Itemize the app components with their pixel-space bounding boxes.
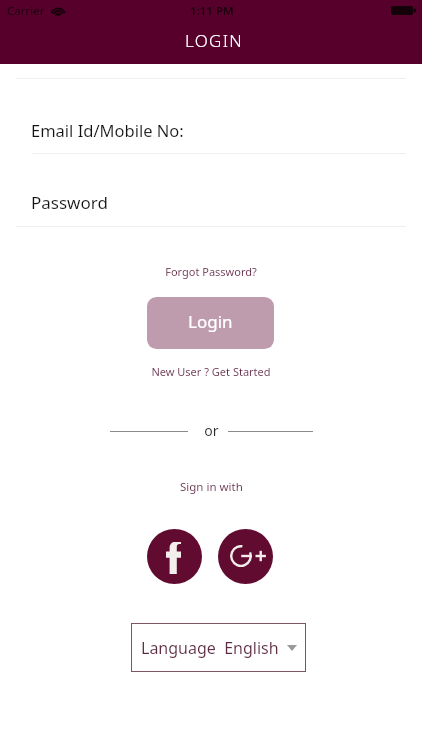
button[interactable]: Language English [131,623,306,672]
button[interactable]: Password [16,175,406,227]
staticText: Forgot Password? [165,264,257,279]
staticText: 1:11 PM [190,3,234,19]
button[interactable]: Email Id/Mobile No: [16,103,406,154]
button[interactable]: Login [147,297,274,349]
staticText: Carrier [7,3,45,19]
staticText: Sign in with [180,479,243,495]
staticText: LOGIN [185,29,243,52]
staticText: Password [31,191,108,214]
staticText: New User ? Get Started [151,364,271,379]
staticText: or [204,421,219,440]
staticText: Language English [141,637,279,659]
staticText: Email Id/Mobile No: [31,119,184,141]
button[interactable]: Sign in with Google Plus [218,529,273,584]
button[interactable]: New User ? Get Started [148,361,274,381]
staticText: Login [188,310,233,333]
button[interactable]: Sign in with Facebook [147,529,202,584]
button[interactable]: Forgot Password? [161,261,261,281]
